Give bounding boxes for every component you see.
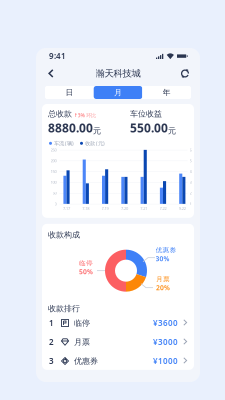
staticText: 环比	[86, 112, 96, 119]
staticText: 月	[114, 88, 122, 97]
staticText: 50%	[79, 267, 93, 276]
staticText: 总收款	[48, 109, 72, 119]
staticText: 200	[50, 158, 56, 163]
staticText: 0	[54, 201, 56, 206]
button[interactable]: Back	[41, 64, 61, 82]
staticText: 月票	[74, 337, 90, 347]
staticText: 3	[49, 356, 54, 366]
staticText: 临停	[79, 259, 93, 267]
button[interactable]: 2	[42, 332, 194, 351]
staticText: 7-17	[63, 206, 70, 211]
staticText: 收款构成	[48, 230, 80, 240]
staticText: 6	[189, 147, 191, 152]
button[interactable]: 日	[45, 86, 94, 99]
staticText: 1	[49, 318, 54, 328]
staticText: 1	[189, 201, 191, 206]
staticText: 收款 (元)	[85, 140, 105, 147]
staticText: 4	[189, 169, 191, 174]
staticText: 车流 (辆)	[54, 140, 74, 147]
button[interactable]: 月	[94, 86, 142, 99]
staticText: 7-22	[159, 206, 166, 211]
staticText: 5	[189, 158, 191, 163]
staticText: 年	[163, 88, 171, 97]
button[interactable]: 1	[42, 313, 194, 332]
staticText: 3	[189, 180, 191, 185]
staticText: ¥1000	[153, 356, 178, 366]
staticText: 7-18	[82, 206, 89, 211]
staticText: 车位收益	[130, 109, 162, 119]
staticText: 250	[50, 147, 56, 152]
staticText: 优惠券	[155, 246, 176, 254]
staticText: 20%	[156, 283, 170, 292]
staticText: 临停	[74, 318, 90, 328]
staticText: 2	[189, 190, 191, 196]
staticText: ↑3%	[73, 112, 84, 119]
staticText: 7-19	[102, 206, 109, 211]
staticText: ¥3600	[153, 318, 178, 328]
staticText: 50	[52, 190, 56, 196]
staticText: ¥3000	[153, 337, 178, 347]
staticText: 元	[93, 126, 101, 136]
staticText: 2	[49, 337, 54, 347]
staticText: 日	[65, 88, 73, 97]
button[interactable]: 年	[142, 86, 191, 99]
staticText: 550.00	[130, 120, 168, 136]
staticText: 元	[168, 126, 176, 136]
staticText: 9-22	[179, 206, 186, 211]
staticText: 瀚天科技城	[95, 68, 140, 79]
staticText: 7-20	[121, 206, 128, 211]
staticText: 9:41	[49, 51, 66, 61]
staticText: 150	[50, 169, 56, 174]
staticText: 月票	[156, 275, 170, 283]
button[interactable]: Refresh	[175, 64, 195, 82]
staticText: 优惠券	[74, 356, 98, 366]
staticText: 100	[50, 180, 56, 185]
staticText: 8880.00	[48, 120, 93, 136]
staticText: 收款排行	[48, 304, 80, 313]
button[interactable]: 3	[42, 351, 194, 370]
staticText: 30%	[155, 254, 169, 263]
staticText: 7-21	[140, 206, 147, 211]
